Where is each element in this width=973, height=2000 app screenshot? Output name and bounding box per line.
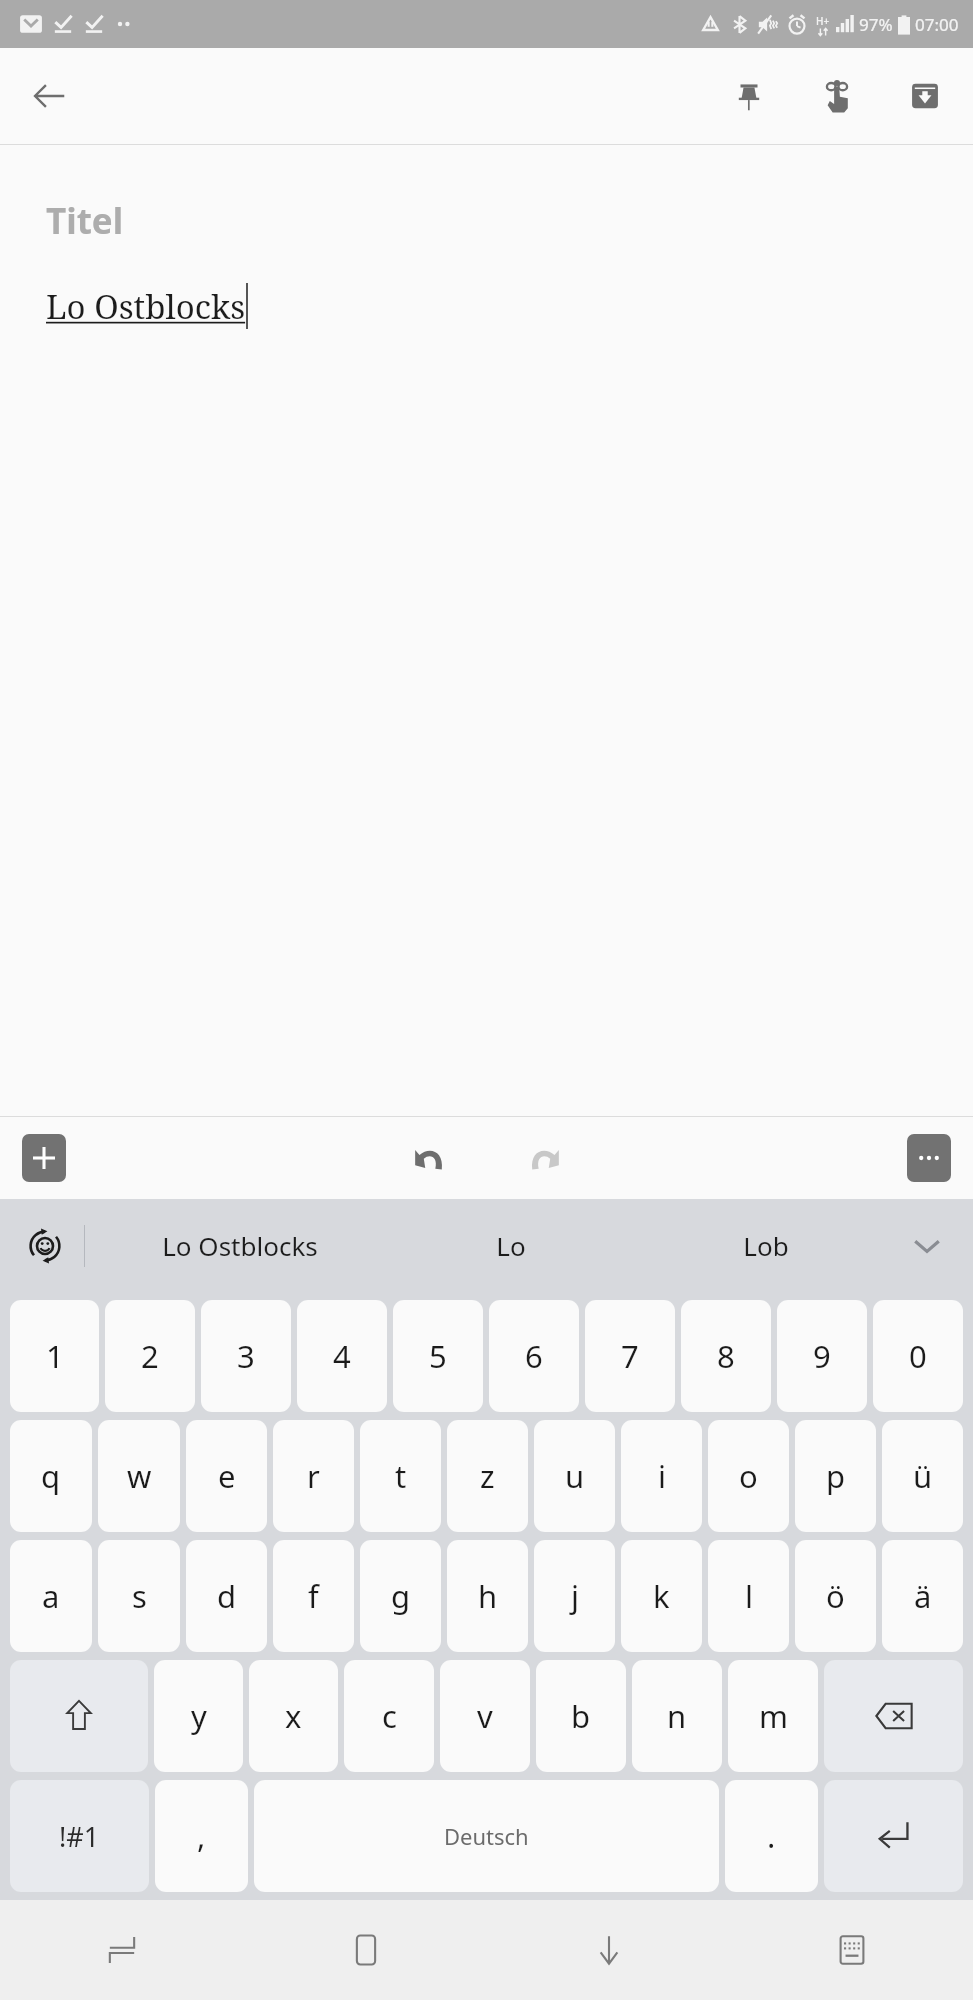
staticText: , [197, 1815, 206, 1857]
button[interactable]: !#1 [10, 1780, 149, 1892]
staticText: . [767, 1815, 776, 1857]
staticText: 7 [621, 1335, 639, 1377]
button[interactable]: w [98, 1420, 180, 1532]
staticText: p [826, 1455, 846, 1497]
staticText: ä [914, 1575, 932, 1617]
button[interactable]: m [728, 1660, 818, 1772]
button[interactable]: h [447, 1540, 528, 1652]
staticText: 6 [525, 1335, 543, 1377]
button[interactable]: j [534, 1540, 615, 1652]
button[interactable]: Back [14, 60, 86, 132]
staticText: 0 [909, 1335, 927, 1377]
button[interactable]: Lob [638, 1199, 893, 1292]
button[interactable]: g [360, 1540, 441, 1652]
button[interactable]: Deutsch [254, 1780, 719, 1892]
button[interactable]: Archive [889, 60, 961, 132]
button[interactable]: y [154, 1660, 243, 1772]
button[interactable]: Backspace [824, 1660, 963, 1772]
button[interactable]: Lo Ostblocks [96, 1199, 383, 1292]
staticText: e [218, 1455, 236, 1497]
button[interactable]: 4 [297, 1300, 387, 1412]
staticText: f [308, 1575, 319, 1617]
staticText: s [132, 1575, 147, 1617]
button[interactable]: . [725, 1780, 818, 1892]
staticText: q [41, 1455, 61, 1497]
staticText: r [307, 1455, 320, 1497]
staticText: n [667, 1695, 687, 1737]
staticText: Lo [496, 1228, 526, 1263]
staticText: v [477, 1695, 493, 1737]
button[interactable]: p [795, 1420, 876, 1532]
button[interactable]: Recents [0, 1900, 244, 2000]
staticText: 8 [717, 1335, 735, 1377]
button[interactable]: 3 [201, 1300, 291, 1412]
button[interactable]: ü [882, 1420, 963, 1532]
staticText: g [391, 1575, 411, 1617]
button[interactable]: ä [882, 1540, 963, 1652]
staticText: b [571, 1695, 591, 1737]
staticText: 4 [333, 1335, 351, 1377]
button[interactable]: b [536, 1660, 626, 1772]
button[interactable]: e [186, 1420, 267, 1532]
staticText: l [745, 1575, 753, 1617]
staticText: 1 [46, 1335, 64, 1377]
button[interactable]: n [632, 1660, 722, 1772]
button[interactable]: d [186, 1540, 267, 1652]
button[interactable]: Add [22, 1134, 66, 1182]
button[interactable]: Pin [713, 60, 785, 132]
staticText: c [382, 1695, 397, 1737]
button[interactable]: Enter [824, 1780, 963, 1892]
button[interactable]: z [447, 1420, 528, 1532]
button[interactable]: l [708, 1540, 789, 1652]
staticText: ö [826, 1575, 845, 1617]
button[interactable]: Lo Ostblocks [46, 283, 248, 329]
staticText: !#1 [59, 1818, 100, 1855]
button[interactable]: , [155, 1780, 248, 1892]
button[interactable]: Hide keyboard [487, 1900, 730, 2000]
button[interactable]: t [360, 1420, 441, 1532]
button[interactable]: q [10, 1420, 92, 1532]
button[interactable]: Lo [383, 1199, 638, 1292]
button[interactable]: c [344, 1660, 434, 1772]
button[interactable]: Shift [10, 1660, 148, 1772]
staticText: u [565, 1455, 585, 1497]
button[interactable]: 8 [681, 1300, 771, 1412]
button[interactable]: Keyboard switch [730, 1900, 973, 2000]
staticText: w [127, 1455, 152, 1497]
button[interactable]: 6 [489, 1300, 579, 1412]
button[interactable]: o [708, 1420, 789, 1532]
button[interactable]: u [534, 1420, 615, 1532]
button[interactable]: Reminder [801, 60, 873, 132]
staticText: 97% [859, 13, 893, 36]
button[interactable]: r [273, 1420, 354, 1532]
staticText: m [759, 1695, 788, 1737]
button[interactable]: 5 [393, 1300, 483, 1412]
staticText: 3 [237, 1335, 255, 1377]
button[interactable]: 0 [873, 1300, 963, 1412]
staticText: z [480, 1455, 495, 1497]
button[interactable]: More options [907, 1134, 951, 1182]
staticText: d [217, 1575, 237, 1617]
button[interactable]: i [621, 1420, 702, 1532]
staticText: k [653, 1575, 670, 1617]
staticText: Lo Ostblocks [162, 1228, 318, 1263]
button[interactable]: Redo [508, 1123, 578, 1193]
button[interactable]: ö [795, 1540, 876, 1652]
button[interactable]: s [98, 1540, 180, 1652]
button[interactable]: x [249, 1660, 338, 1772]
button[interactable]: a [10, 1540, 92, 1652]
button[interactable]: 7 [585, 1300, 675, 1412]
button[interactable]: 2 [105, 1300, 195, 1412]
button[interactable]: Undo [396, 1123, 466, 1193]
button[interactable]: v [440, 1660, 530, 1772]
staticText: Deutsch [444, 1821, 529, 1851]
button[interactable]: k [621, 1540, 702, 1652]
button[interactable]: f [273, 1540, 354, 1652]
button[interactable]: 1 [10, 1300, 99, 1412]
button[interactable]: Home [244, 1900, 487, 2000]
button[interactable]: 9 [777, 1300, 867, 1412]
button[interactable]: Emoji [16, 1217, 74, 1275]
staticText: 07:00 [915, 13, 959, 36]
button[interactable]: Titel [46, 197, 124, 245]
button[interactable]: Expand suggestions [899, 1218, 955, 1274]
